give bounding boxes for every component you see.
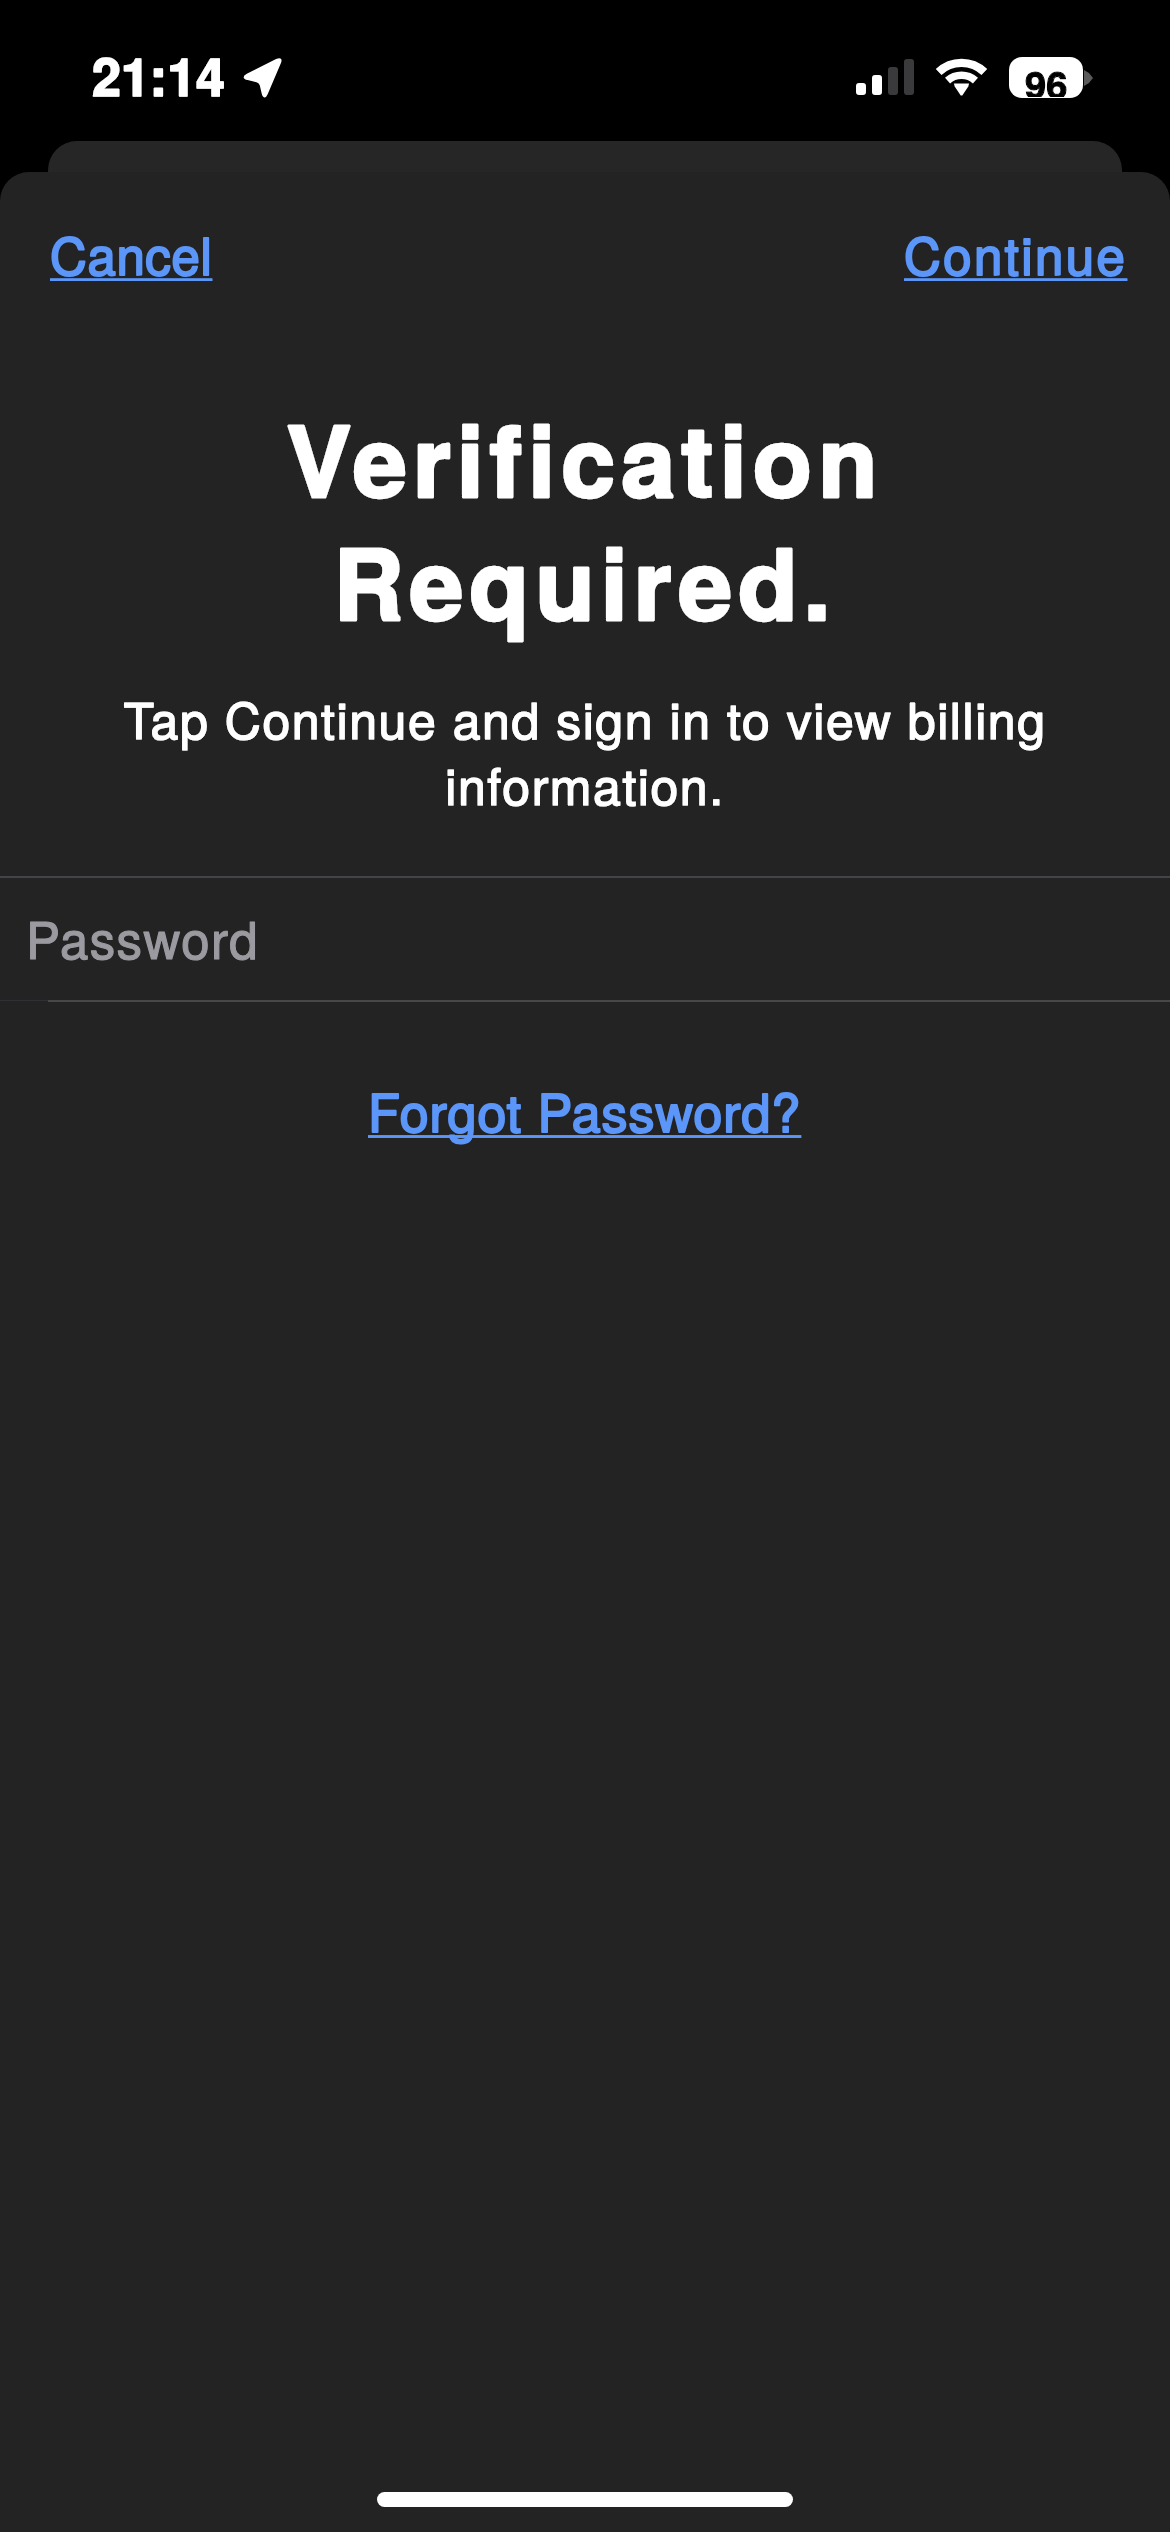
staticText: 96 (1025, 57, 1068, 97)
staticText: Forgot Password? (368, 1072, 802, 1146)
staticText: Cancel (50, 216, 213, 289)
staticText: 21:14 (92, 37, 225, 111)
button[interactable]: Cancel (40, 208, 223, 297)
button[interactable]: Continue (894, 208, 1138, 297)
other: Cellular signal strength (856, 57, 914, 95)
staticText: Continue (904, 216, 1128, 289)
other: Location services active (238, 54, 290, 104)
button[interactable]: Password (0, 878, 1170, 1000)
staticText: Continue (904, 216, 1128, 289)
other: Wi-Fi connected (920, 40, 1004, 100)
staticText: Verification Required. (90, 388, 1080, 649)
staticText: Forgot Password? (368, 1072, 802, 1146)
staticText: Password (26, 900, 260, 973)
staticText: Cancel (50, 216, 213, 289)
staticText: Tap Continue and sign in to view billing… (95, 682, 1075, 819)
staticText: Password (26, 900, 260, 973)
staticText: 21:14 (92, 37, 225, 111)
staticText: Verification Required. (90, 388, 1080, 649)
staticText: Tap Continue and sign in to view billing… (95, 682, 1075, 819)
button[interactable]: Forgot Password? (358, 1064, 812, 1154)
staticText: 96 (1025, 57, 1068, 97)
